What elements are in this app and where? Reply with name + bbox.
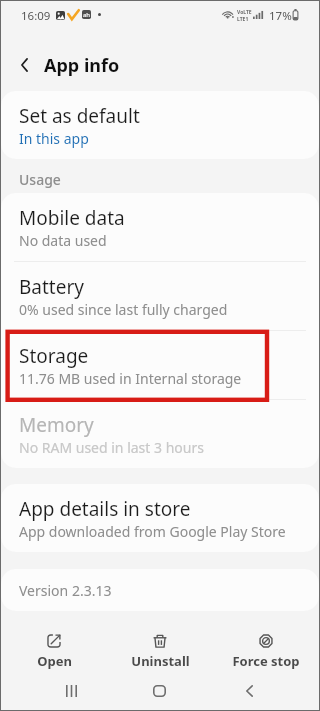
staticText: VoLTE — [237, 9, 252, 16]
staticText: 17% — [269, 8, 292, 24]
staticText: ah — [83, 11, 91, 19]
staticText: No RAM used in last 3 hours — [19, 438, 204, 457]
staticText: Usage — [19, 170, 61, 189]
staticText: App details in store — [19, 496, 191, 522]
staticText: 11.76 MB used in Internal storage — [19, 369, 242, 388]
staticText: App info — [44, 53, 120, 78]
staticText: 16:09 — [21, 8, 51, 24]
staticText: App downloaded from Google Play Store — [19, 522, 286, 541]
staticText: No data used — [19, 231, 107, 250]
button[interactable]: Recents — [50, 678, 92, 710]
staticText: Force stop — [232, 652, 300, 670]
button[interactable]: Mobile data — [1, 193, 319, 261]
staticText: Mobile data — [19, 205, 125, 231]
staticText: LTE1 — [237, 16, 249, 23]
button[interactable]: Back — [228, 678, 270, 710]
staticText: In this app — [19, 129, 89, 148]
button[interactable]: Force stop — [213, 611, 319, 678]
staticText: Uninstall — [131, 652, 190, 670]
staticText: Storage — [19, 343, 89, 369]
button[interactable]: Storage — [1, 331, 319, 399]
button[interactable]: Home — [138, 678, 180, 710]
button[interactable]: Navigate up — [11, 51, 38, 78]
staticText: Memory — [19, 412, 94, 438]
button[interactable]: Uninstall — [107, 611, 213, 678]
button[interactable]: App details in store — [1, 484, 319, 552]
button[interactable]: Memory — [1, 400, 319, 468]
button[interactable]: Battery — [1, 262, 319, 330]
staticText: Battery — [19, 274, 84, 300]
button[interactable]: Open — [1, 611, 107, 678]
staticText: 0% used since last fully charged — [19, 300, 228, 319]
staticText: Version 2.3.13 — [19, 581, 112, 600]
button[interactable]: Set as default — [1, 91, 319, 159]
staticText: Set as default — [19, 103, 140, 129]
staticText: Open — [37, 652, 72, 670]
